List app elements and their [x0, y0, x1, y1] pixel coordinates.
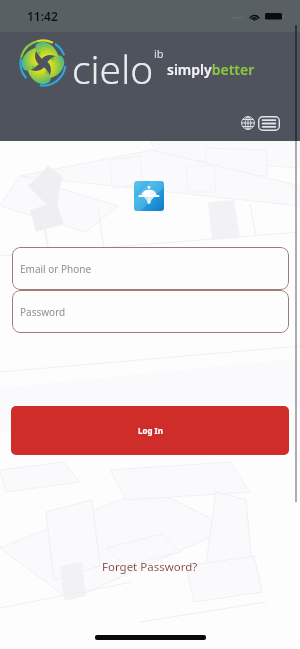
button[interactable]: Menu — [258, 116, 280, 131]
button[interactable]: Forget Password? — [100, 557, 200, 577]
button[interactable]: Language — [239, 114, 257, 132]
button[interactable]: Log In — [11, 406, 289, 455]
staticText: ib — [154, 46, 164, 61]
button[interactable]: Email or Phone — [12, 247, 289, 290]
button[interactable]: Password — [12, 290, 289, 333]
staticText: simplybetter — [167, 60, 255, 79]
staticText: 11:42 — [27, 8, 58, 24]
staticText: cielo — [72, 42, 154, 95]
staticText: Forget Password? — [102, 559, 198, 575]
staticText: Log In — [138, 425, 163, 436]
staticText: Password — [20, 305, 66, 319]
staticText: Email or Phone — [20, 262, 92, 276]
